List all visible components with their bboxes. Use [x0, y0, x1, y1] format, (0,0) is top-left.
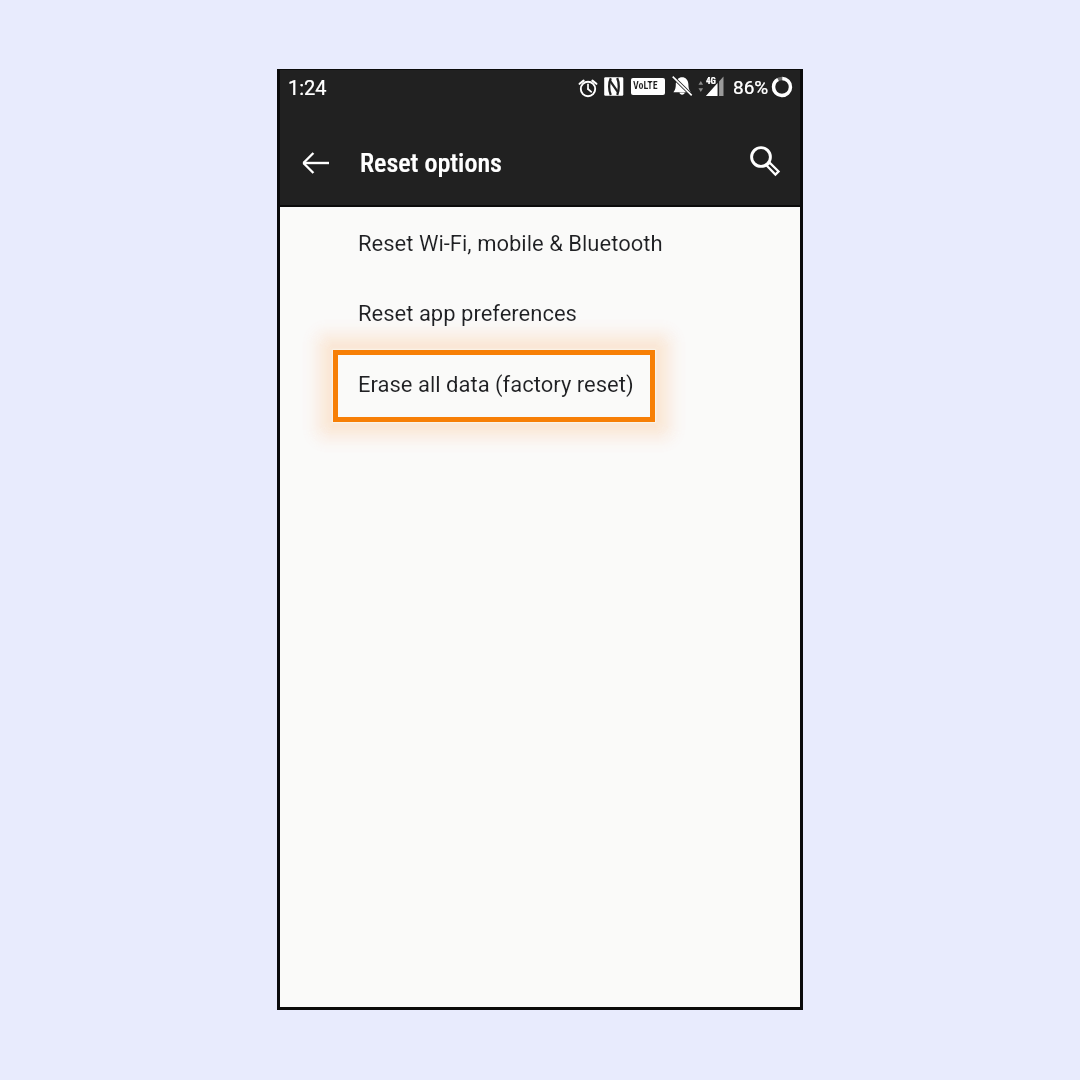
staticText: Erase all data (factory reset): [358, 372, 634, 398]
button[interactable]: Reset app preferences: [280, 279, 800, 349]
button[interactable]: Search: [742, 141, 786, 185]
button[interactable]: Back: [296, 143, 336, 183]
staticText: 86%: [733, 76, 769, 98]
staticText: 1:24: [288, 76, 327, 99]
button[interactable]: Erase all data (factory reset): [280, 350, 800, 420]
staticText: Reset Wi-Fi, mobile & Bluetooth: [358, 231, 663, 257]
staticText: Reset app preferences: [358, 301, 577, 327]
button[interactable]: [333, 350, 655, 422]
staticText: VoLTE: [633, 80, 658, 92]
staticText: Reset options: [360, 148, 502, 178]
staticText: 4G: [706, 76, 716, 87]
button[interactable]: Reset Wi-Fi, mobile & Bluetooth: [280, 209, 800, 279]
